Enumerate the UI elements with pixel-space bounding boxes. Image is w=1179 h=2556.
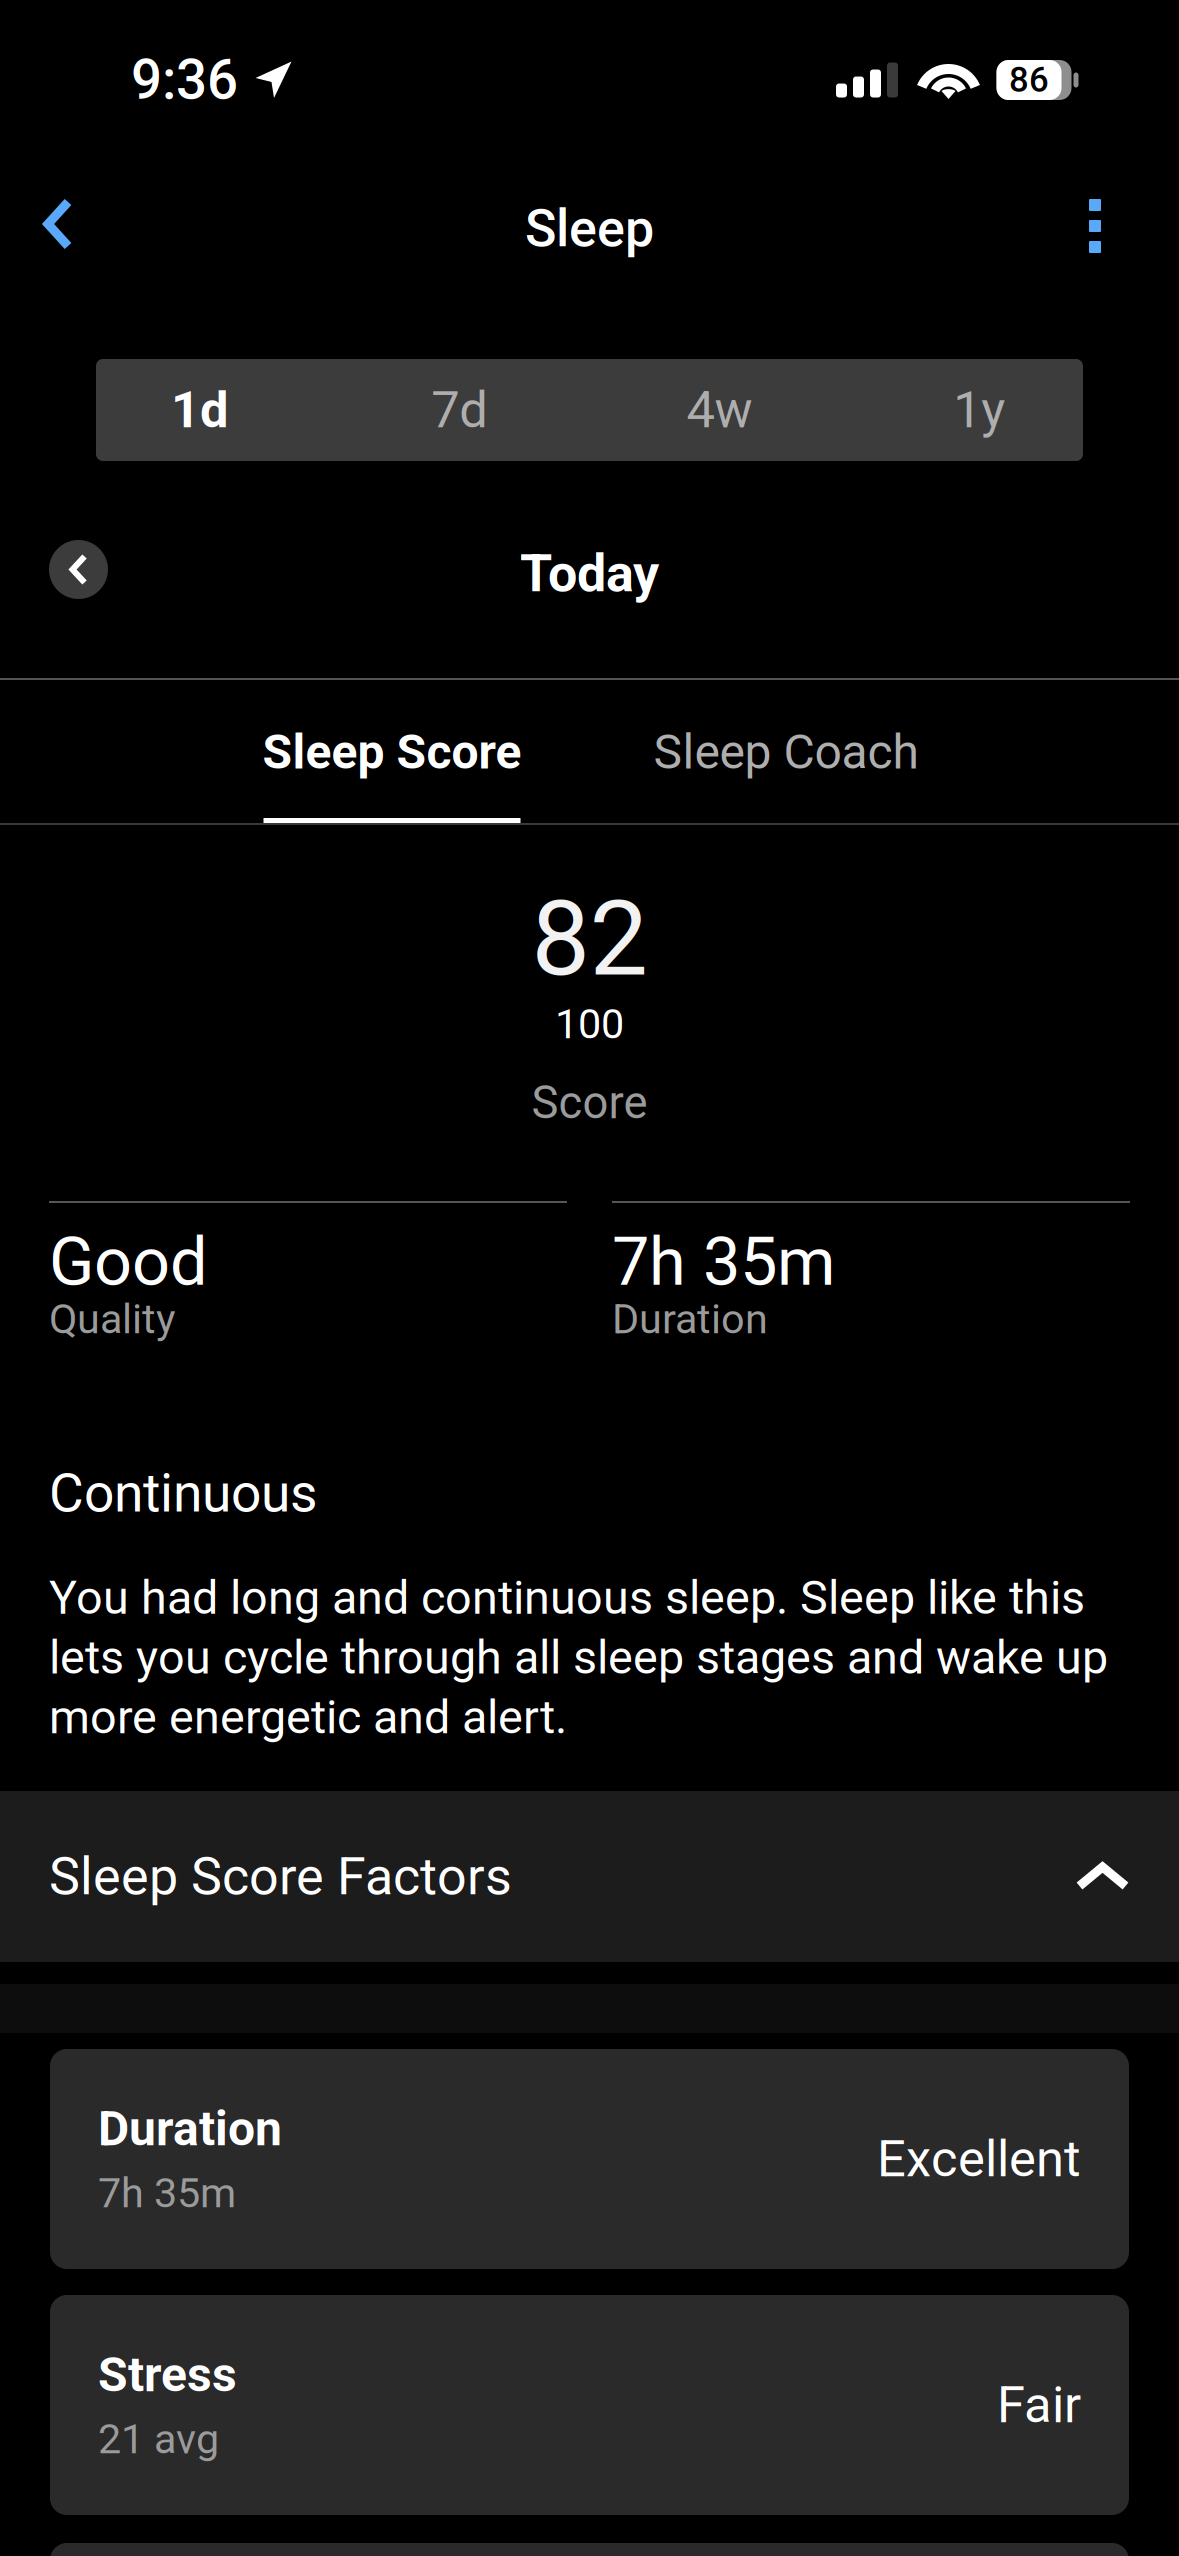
- button[interactable]: Sleep Coach: [588, 680, 984, 823]
- staticText: 4w: [686, 380, 752, 440]
- button[interactable]: 1d: [70, 359, 330, 461]
- button[interactable]: 1y: [849, 359, 1109, 461]
- button[interactable]: 7d: [330, 359, 590, 461]
- staticText: 100: [555, 1000, 624, 1048]
- staticText: You had long and continuous sleep. Sleep…: [49, 1570, 1108, 1745]
- button[interactable]: Duration: [50, 2049, 1129, 2269]
- staticText: Sleep Score Factors: [49, 1846, 512, 1907]
- staticText: Excellent: [877, 2129, 1081, 2189]
- staticText: Score: [531, 1076, 647, 1129]
- staticText: Quality: [49, 1295, 176, 1343]
- staticText: 9:36: [131, 48, 238, 112]
- staticText: Sleep Score: [262, 724, 521, 780]
- staticText: Duration: [612, 1295, 768, 1343]
- staticText: Stress: [98, 2347, 237, 2403]
- button[interactable]: Sleep Score: [196, 680, 588, 823]
- staticText: Fair: [997, 2375, 1081, 2435]
- button[interactable]: Sleep Score Factors: [0, 1791, 1179, 1962]
- staticText: Good: [49, 1223, 208, 1301]
- staticText: 7d: [431, 380, 488, 440]
- staticText: 82: [531, 878, 647, 1000]
- button[interactable]: 4w: [589, 359, 849, 461]
- button[interactable]: Previous day: [49, 540, 108, 599]
- button[interactable]: Stress: [50, 2295, 1129, 2515]
- staticText: Duration: [98, 2101, 282, 2157]
- button[interactable]: Awake Time: [50, 2543, 1129, 2556]
- staticText: Sleep Coach: [653, 724, 918, 780]
- staticText: 21 avg: [98, 2415, 219, 2463]
- staticText: 1d: [171, 380, 229, 440]
- staticText: 7h 35m: [98, 2169, 236, 2217]
- staticText: 1y: [953, 380, 1005, 440]
- staticText: Today: [520, 543, 659, 604]
- staticText: 7h 35m: [612, 1223, 835, 1301]
- staticText: Sleep: [525, 198, 654, 259]
- staticText: Continuous: [49, 1462, 318, 1524]
- staticText: 86: [1009, 60, 1049, 100]
- button[interactable]: Back: [3, 163, 113, 279]
- button[interactable]: More options: [1040, 161, 1150, 281]
